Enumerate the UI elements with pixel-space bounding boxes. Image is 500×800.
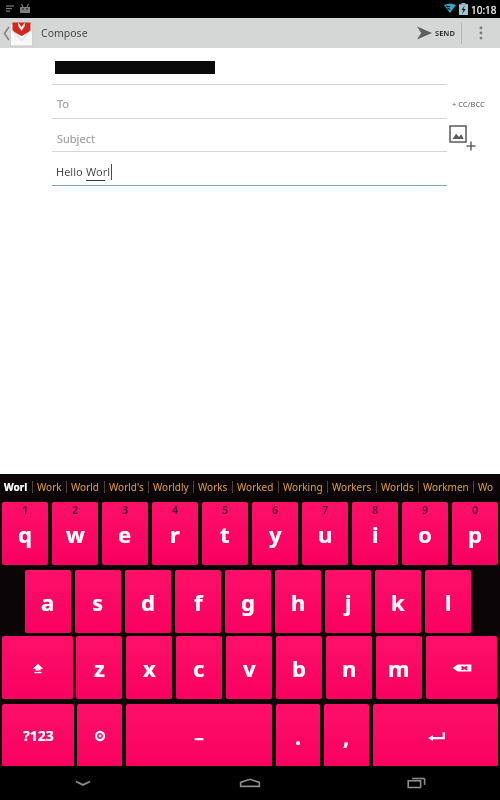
button[interactable]: Backspace bbox=[426, 636, 497, 699]
staticText: Subject bbox=[57, 131, 95, 146]
button[interactable]: l bbox=[425, 570, 471, 633]
staticText: 4 bbox=[172, 502, 179, 517]
button[interactable]: f bbox=[175, 570, 221, 633]
button[interactable]: n bbox=[326, 636, 372, 699]
button[interactable]: v bbox=[226, 636, 272, 699]
staticText: b bbox=[292, 653, 306, 683]
staticText: y bbox=[269, 519, 282, 549]
staticText: a bbox=[41, 587, 55, 617]
button[interactable]: 6 bbox=[252, 502, 298, 565]
button[interactable]: Work bbox=[33, 474, 66, 500]
button[interactable]: x bbox=[126, 636, 172, 699]
staticText: p bbox=[468, 519, 482, 549]
button[interactable]: Worlds bbox=[377, 474, 418, 500]
button[interactable]: Home bbox=[166, 766, 333, 800]
button[interactable]: Shift bbox=[2, 636, 73, 699]
button[interactable]: . bbox=[276, 704, 320, 767]
staticText: z bbox=[94, 653, 105, 683]
staticText: l bbox=[445, 587, 452, 617]
button[interactable]: a bbox=[25, 570, 71, 633]
button[interactable]: Navigate up bbox=[0, 18, 32, 48]
button[interactable]: 5 bbox=[202, 502, 248, 565]
staticText: 8 bbox=[372, 502, 379, 517]
button[interactable]: Worl bbox=[0, 474, 32, 500]
button[interactable]: 3 bbox=[102, 502, 148, 565]
button[interactable]: 1 bbox=[2, 502, 48, 565]
button[interactable]: b bbox=[276, 636, 322, 699]
button[interactable]: 9 bbox=[402, 502, 448, 565]
button[interactable]: Workmen bbox=[419, 474, 473, 500]
staticText: h bbox=[291, 587, 306, 617]
button[interactable]: 0 bbox=[452, 502, 498, 565]
staticText: q bbox=[18, 519, 32, 549]
button[interactable]: More options bbox=[462, 18, 500, 48]
button[interactable]: 2 bbox=[52, 502, 98, 565]
button[interactable]: z bbox=[76, 636, 122, 699]
button[interactable]: Working bbox=[279, 474, 327, 500]
staticText: Works bbox=[198, 480, 228, 494]
staticText: j bbox=[345, 587, 352, 617]
staticText: 9 bbox=[422, 502, 429, 517]
staticText: d bbox=[141, 587, 155, 617]
button[interactable]: World bbox=[67, 474, 104, 500]
button[interactable]: Worker bbox=[474, 474, 500, 500]
staticText: Workers bbox=[332, 480, 372, 494]
button[interactable]: s bbox=[75, 570, 121, 633]
button[interactable]: , bbox=[324, 704, 369, 767]
button[interactable]: Workers bbox=[328, 474, 376, 500]
button[interactable]: m bbox=[376, 636, 422, 699]
staticText: e bbox=[118, 519, 132, 549]
staticText: Worlds bbox=[381, 480, 414, 494]
button[interactable]: d bbox=[125, 570, 171, 633]
staticText: Worker bbox=[478, 480, 496, 494]
button[interactable]: Works bbox=[194, 474, 232, 500]
staticText: g bbox=[241, 587, 255, 617]
staticText: World's bbox=[109, 480, 144, 494]
staticText: v bbox=[243, 653, 256, 683]
button[interactable]: j bbox=[325, 570, 371, 633]
button[interactable]: Hide keyboard bbox=[0, 766, 166, 800]
staticText: m bbox=[388, 653, 410, 683]
staticText: x bbox=[143, 653, 156, 683]
button[interactable]: Worked bbox=[233, 474, 278, 500]
staticText: 1 bbox=[22, 502, 29, 517]
staticText: Worl bbox=[4, 480, 28, 494]
staticText: 5 bbox=[222, 502, 229, 517]
staticText: w bbox=[66, 519, 85, 549]
button[interactable]: c bbox=[176, 636, 222, 699]
staticText: Worldly bbox=[153, 480, 189, 494]
staticText: i bbox=[372, 519, 379, 549]
button[interactable]: 4 bbox=[152, 502, 198, 565]
staticText: SEND bbox=[435, 28, 455, 38]
button[interactable]: SEND bbox=[403, 18, 461, 48]
button[interactable]: Attach picture bbox=[450, 126, 476, 152]
button[interactable]: World's bbox=[105, 474, 148, 500]
staticText: k bbox=[391, 587, 405, 617]
button[interactable]: Change keyboard bbox=[77, 704, 122, 767]
button[interactable]: g bbox=[225, 570, 271, 633]
button[interactable]: Enter bbox=[373, 704, 498, 767]
staticText: 10:18 bbox=[471, 3, 497, 17]
staticText: ?123 bbox=[23, 726, 54, 745]
staticText: 6 bbox=[272, 502, 279, 517]
staticText: Worked bbox=[237, 480, 274, 494]
button[interactable]: 7 bbox=[302, 502, 348, 565]
staticText: Worl bbox=[86, 164, 111, 179]
staticText: o bbox=[418, 519, 432, 549]
staticText: t bbox=[220, 519, 230, 549]
button[interactable]: h bbox=[275, 570, 321, 633]
staticText: s bbox=[92, 587, 104, 617]
button[interactable]: Recent apps bbox=[333, 766, 500, 800]
staticText: To bbox=[57, 96, 70, 111]
staticText: 2 bbox=[72, 502, 79, 517]
button[interactable]: 8 bbox=[352, 502, 398, 565]
button[interactable]: Worldly bbox=[149, 474, 193, 500]
button[interactable]: + CC/BCC bbox=[452, 99, 485, 109]
button[interactable]: k bbox=[375, 570, 421, 633]
staticText: Workmen bbox=[423, 480, 469, 494]
button[interactable]: Space bbox=[126, 704, 272, 767]
staticText: 7 bbox=[322, 502, 329, 517]
button[interactable]: ?123 bbox=[2, 704, 74, 767]
staticText: , bbox=[343, 721, 350, 751]
staticText: . bbox=[295, 721, 302, 751]
